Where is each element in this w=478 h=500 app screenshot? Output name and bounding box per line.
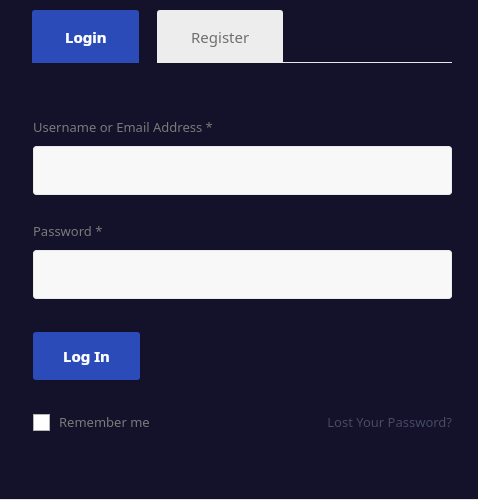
staticText: Log In <box>63 346 110 366</box>
button[interactable] <box>33 250 452 299</box>
staticText: Lost Your Password? <box>327 413 452 431</box>
staticText: Register <box>191 27 250 47</box>
button[interactable]: Lost Your Password? <box>327 413 452 431</box>
staticText: Username or Email Address * <box>33 118 213 136</box>
button[interactable] <box>33 146 452 195</box>
other: Remember me checkbox <box>33 414 50 431</box>
button[interactable]: Register <box>157 10 283 63</box>
button[interactable]: Login <box>32 10 139 63</box>
staticText: Login <box>65 27 107 47</box>
button[interactable]: Log In <box>33 332 140 380</box>
staticText: Remember me <box>59 413 150 431</box>
staticText: Password * <box>33 222 103 240</box>
button[interactable]: Remember me checkbox <box>33 413 150 431</box>
